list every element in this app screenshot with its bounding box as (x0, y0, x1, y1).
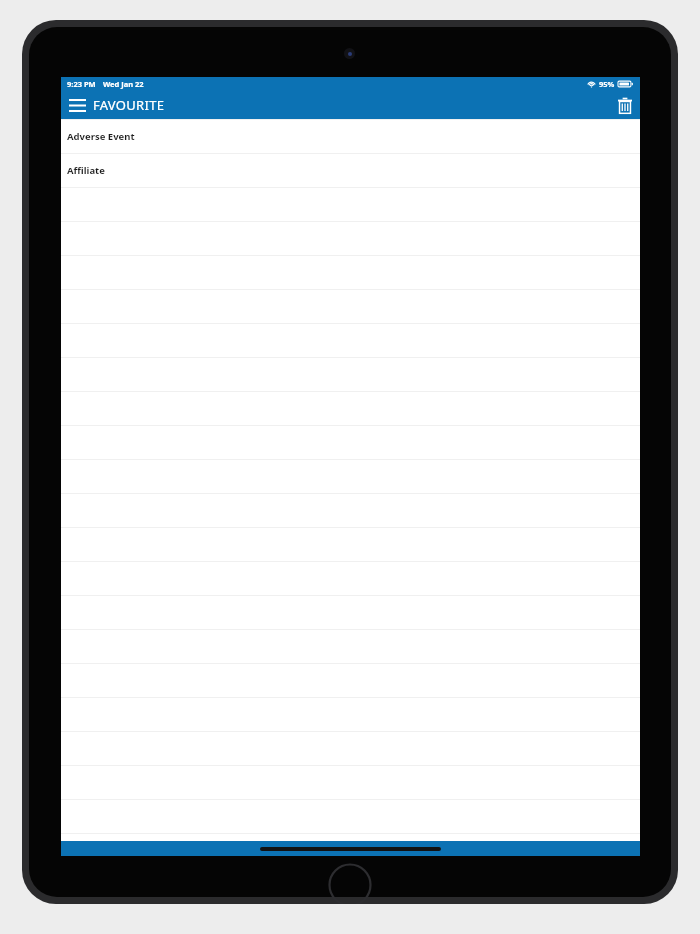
staticText: Affiliate (67, 164, 105, 177)
staticText: 95% (599, 79, 615, 89)
button[interactable]: Affiliate (61, 154, 640, 188)
button[interactable]: Delete (610, 94, 640, 117)
button[interactable]: Menu (61, 92, 173, 118)
staticText: Wed Jan 22 (103, 79, 144, 89)
staticText: Adverse Event (67, 130, 135, 143)
staticText: FAVOURITE (93, 96, 165, 114)
other: Menu (69, 99, 86, 112)
staticText: 9:23 PM (67, 79, 96, 89)
button[interactable]: Adverse Event (61, 120, 640, 154)
